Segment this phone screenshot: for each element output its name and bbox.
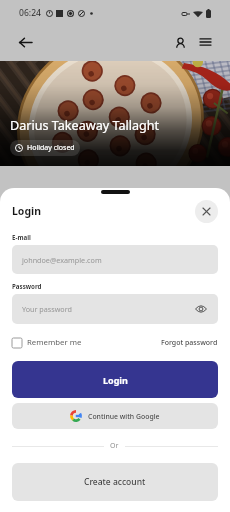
staticText: 06:24	[19, 7, 42, 19]
staticText: Forgot password	[161, 338, 218, 348]
button[interactable]: Back	[8, 25, 42, 59]
staticText: Remember me	[27, 337, 82, 348]
button[interactable]: Login	[12, 361, 218, 398]
button[interactable]: Create account	[12, 463, 218, 501]
button[interactable]: johndoe@example.com	[12, 245, 218, 274]
staticText: Login	[103, 374, 128, 386]
button[interactable]: Continue with Google	[12, 403, 218, 429]
staticText: Password	[12, 282, 42, 290]
staticText: johndoe@example.com	[22, 255, 102, 265]
staticText: Create account	[84, 476, 146, 488]
button[interactable]: Show password	[194, 302, 208, 316]
staticText: Holiday closed	[27, 143, 75, 153]
button[interactable]: Account	[165, 28, 196, 59]
staticText: E-mail	[12, 233, 31, 241]
staticText: Darius Takeaway Tallaght	[10, 117, 160, 134]
button[interactable]: Remember me	[12, 335, 82, 350]
button[interactable]: Menu	[190, 26, 221, 57]
button[interactable]: Close	[195, 200, 218, 223]
button[interactable]: Forgot password	[161, 336, 218, 350]
staticText: Login	[12, 204, 42, 218]
staticText: Or	[110, 441, 119, 451]
staticText: Your password	[22, 304, 72, 314]
staticText: Continue with Google	[88, 412, 160, 421]
button[interactable]: Your password	[12, 294, 218, 324]
